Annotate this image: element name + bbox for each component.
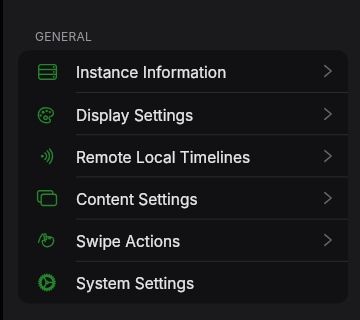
other: Open Display Settings [321, 107, 335, 121]
other: Open Remote Local Timelines [321, 149, 335, 163]
staticText: Swipe Actions [76, 232, 181, 251]
button[interactable]: Swipe Actions [18, 219, 348, 261]
other: Open Swipe Actions [321, 233, 335, 247]
other: Open Instance Information [321, 64, 335, 78]
staticText: Display Settings [76, 106, 194, 125]
staticText: Content Settings [76, 190, 198, 209]
other: Open Content Settings [321, 191, 335, 205]
button[interactable]: System Settings [18, 261, 348, 303]
staticText: GENERAL [35, 29, 92, 44]
staticText: Instance Information [76, 63, 227, 82]
button[interactable]: Display Settings [18, 93, 348, 135]
button[interactable]: Content Settings [18, 177, 348, 219]
staticText: Remote Local Timelines [76, 148, 251, 167]
button[interactable]: Instance Information [18, 50, 348, 92]
staticText: System Settings [76, 274, 195, 293]
button[interactable]: Remote Local Timelines [18, 135, 348, 177]
